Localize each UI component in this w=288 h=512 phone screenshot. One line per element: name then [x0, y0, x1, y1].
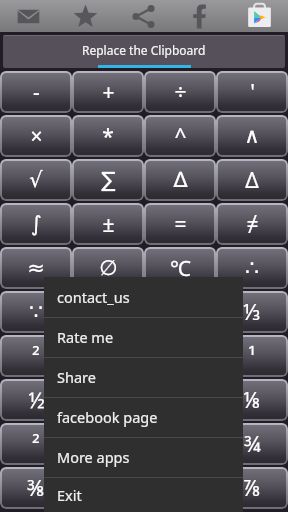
button[interactable]: ⁴: [144, 335, 216, 377]
button[interactable]: ⅔: [72, 379, 144, 421]
staticText: ÷: [174, 78, 187, 107]
button[interactable]: Share: [44, 357, 243, 397]
button[interactable]: ¾: [216, 423, 288, 465]
button[interactable]: ⅜: [0, 467, 72, 509]
button[interactable]: ∅: [72, 247, 144, 289]
staticText: ¼: [172, 386, 188, 415]
staticText: facebook page: [57, 407, 158, 427]
button[interactable]: ≠: [216, 203, 288, 245]
staticText: ∅: [99, 256, 118, 280]
staticText: ³: [104, 342, 112, 371]
staticText: ℃: [170, 254, 191, 283]
staticText: ⅚: [99, 474, 117, 503]
button[interactable]: ³: [72, 335, 144, 377]
button[interactable]: Exit: [44, 477, 243, 512]
staticText: ∴: [245, 256, 259, 280]
staticText: ≈: [27, 256, 45, 280]
staticText: ⅔: [99, 386, 118, 415]
staticText: ^: [174, 122, 187, 151]
button[interactable]: √: [0, 159, 72, 201]
button[interactable]: Facebook: [172, 0, 230, 32]
button[interactable]: ⅓: [216, 291, 288, 333]
button[interactable]: ∧: [216, 115, 288, 157]
button[interactable]: ∵: [0, 291, 72, 333]
staticText: ⅝: [171, 474, 189, 503]
staticText: ∑: [101, 168, 116, 192]
button[interactable]: ∆: [144, 159, 216, 201]
staticText: ⁴: [176, 342, 184, 371]
staticText: ⅓: [243, 298, 261, 327]
button[interactable]: ⅗: [72, 423, 144, 465]
staticText: ⅘: [171, 430, 189, 459]
staticText: ∆: [173, 168, 188, 192]
button[interactable]: ²: [0, 335, 72, 377]
staticText: Share: [57, 367, 96, 387]
staticText: ∫: [31, 212, 42, 236]
staticText: ²: [32, 342, 40, 371]
button[interactable]: ⅚: [72, 467, 144, 509]
button[interactable]: ¼: [144, 379, 216, 421]
button[interactable]: Replace the Clipboard: [3, 35, 285, 68]
staticText: √: [29, 168, 43, 192]
button[interactable]: ⅞: [216, 467, 288, 509]
button[interactable]: Favorite: [57, 0, 114, 32]
button[interactable]: Δ: [216, 159, 288, 201]
staticText: ²: [32, 430, 40, 459]
button[interactable]: Rate me: [44, 317, 243, 357]
staticText: Exit: [57, 485, 82, 505]
staticText: +: [102, 78, 115, 107]
staticText: ±: [102, 210, 115, 239]
staticText: ¾: [244, 430, 261, 459]
button[interactable]: *: [72, 115, 144, 157]
button[interactable]: =: [144, 203, 216, 245]
button[interactable]: ∑: [72, 159, 144, 201]
button[interactable]: ℃: [144, 247, 216, 289]
staticText: ⅛: [243, 386, 261, 415]
staticText: ×: [30, 122, 43, 151]
button[interactable]: ∝: [144, 291, 216, 333]
staticText: ⅞: [243, 474, 261, 503]
button[interactable]: ×: [0, 115, 72, 157]
staticText: Δ: [245, 166, 259, 195]
button[interactable]: -: [0, 71, 72, 113]
button[interactable]: ≈: [0, 247, 72, 289]
staticText: =: [174, 210, 187, 239]
staticText: ¹: [248, 342, 256, 371]
button[interactable]: ±: [72, 203, 144, 245]
staticText: *: [102, 122, 114, 151]
staticText: ∞: [99, 300, 117, 324]
staticText: contact_us: [57, 287, 130, 307]
button[interactable]: ^: [144, 115, 216, 157]
button[interactable]: facebook page: [44, 397, 243, 437]
button[interactable]: ∴: [216, 247, 288, 289]
button[interactable]: ∫: [0, 203, 72, 245]
button[interactable]: ': [216, 71, 288, 113]
staticText: Rate me: [57, 327, 114, 347]
staticText: ': [250, 78, 255, 107]
staticText: ∝: [172, 300, 188, 324]
staticText: ≠: [246, 210, 259, 239]
button[interactable]: ∞: [72, 291, 144, 333]
staticText: ½: [28, 386, 45, 415]
staticText: -: [33, 78, 40, 107]
button[interactable]: ¹: [216, 335, 288, 377]
button[interactable]: More apps: [44, 437, 243, 477]
button[interactable]: Google Play: [230, 0, 288, 32]
button[interactable]: ⅛: [216, 379, 288, 421]
staticText: ⅗: [99, 430, 118, 459]
button[interactable]: contact_us: [44, 277, 243, 317]
button[interactable]: +: [72, 71, 144, 113]
staticText: ∵: [29, 300, 43, 324]
button[interactable]: Email: [0, 0, 57, 32]
button[interactable]: ÷: [144, 71, 216, 113]
staticText: More apps: [57, 447, 130, 467]
staticText: ∧: [244, 124, 260, 148]
button[interactable]: ⅝: [144, 467, 216, 509]
staticText: ⅜: [27, 474, 45, 503]
staticText: Replace the Clipboard: [82, 42, 206, 58]
button[interactable]: ⅘: [144, 423, 216, 465]
button[interactable]: Share: [114, 0, 172, 32]
button[interactable]: ²: [0, 423, 72, 465]
button[interactable]: ½: [0, 379, 72, 421]
